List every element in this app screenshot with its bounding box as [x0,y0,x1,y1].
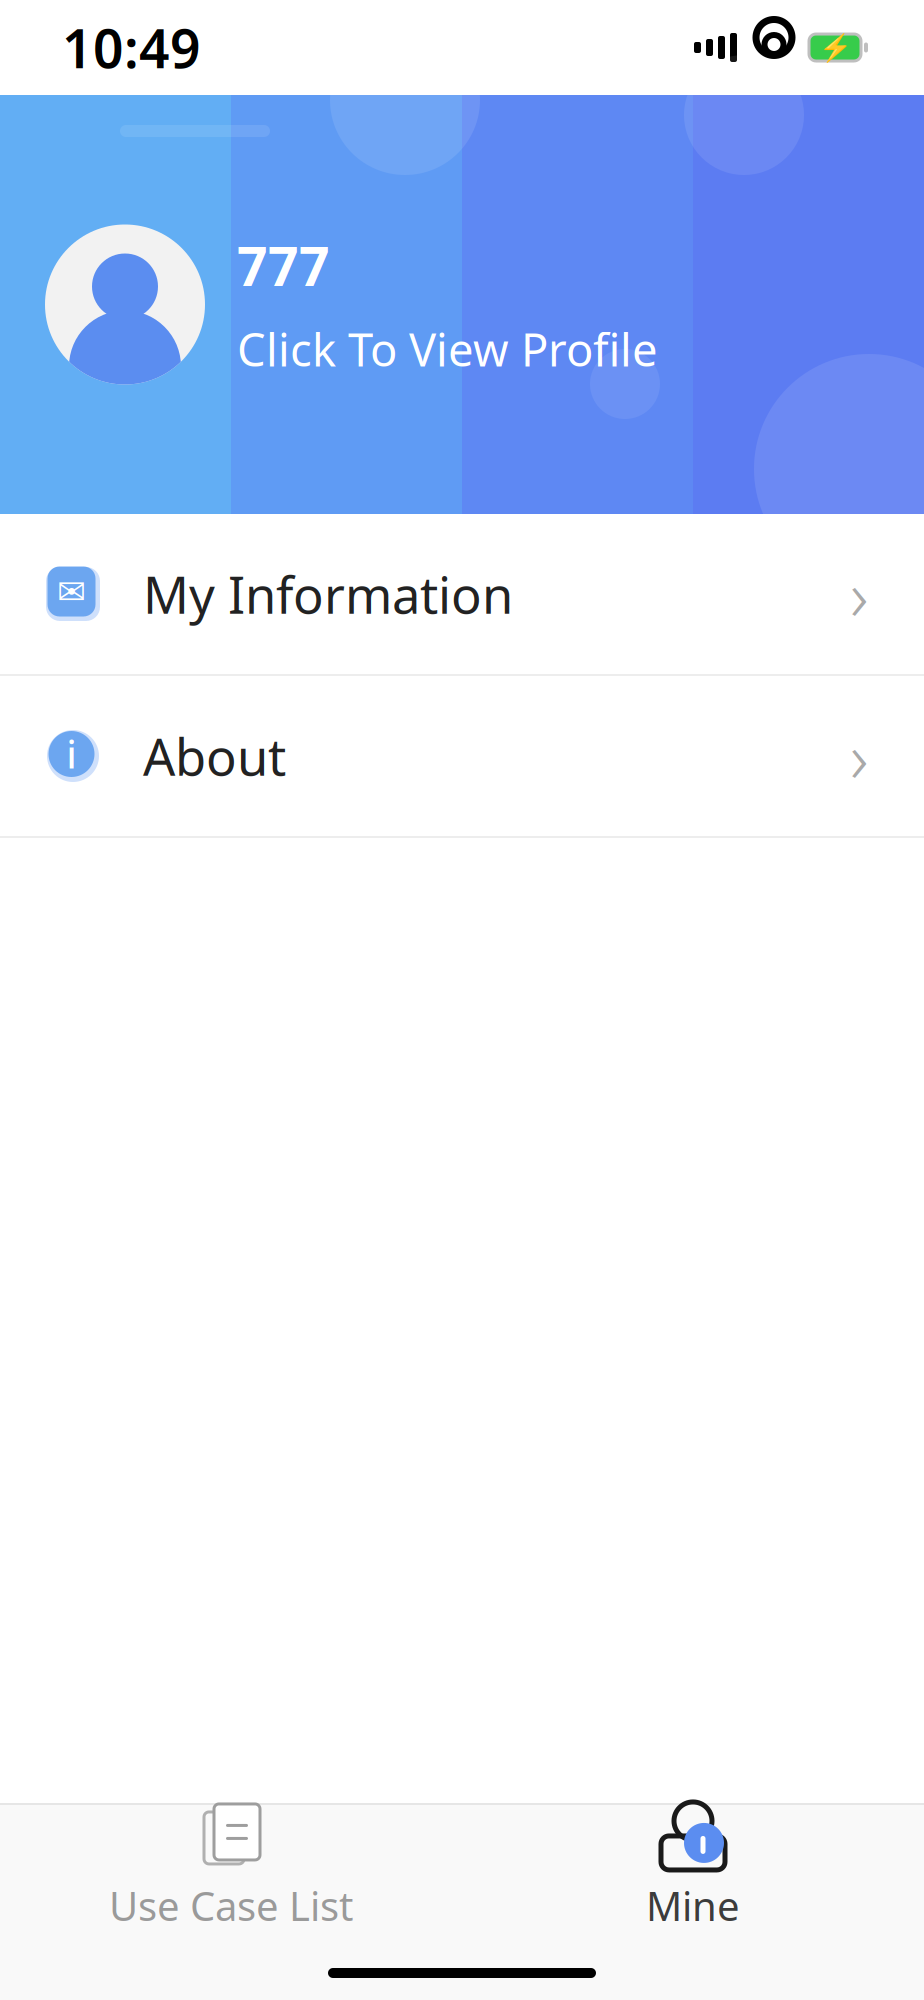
button[interactable]: ✉ [0,514,924,674]
staticText: ✉ [57,572,86,612]
button[interactable]: Mine [462,1805,924,1930]
staticText: 10:49 [62,12,201,83]
staticText: Click To View Profile [237,319,658,379]
button[interactable]: 777 [0,95,924,514]
staticText: i [66,729,76,779]
button[interactable]: Use Case List [0,1805,462,1930]
staticText: Mine [646,1879,740,1932]
staticText: My Information [143,560,513,628]
staticText: › [850,710,868,802]
button[interactable]: i [0,676,924,836]
staticText: ⚡ [818,32,851,63]
staticText: Use Case List [109,1879,353,1932]
staticText: 777 [237,230,330,301]
staticText: › [850,548,868,640]
staticText: About [143,722,286,790]
